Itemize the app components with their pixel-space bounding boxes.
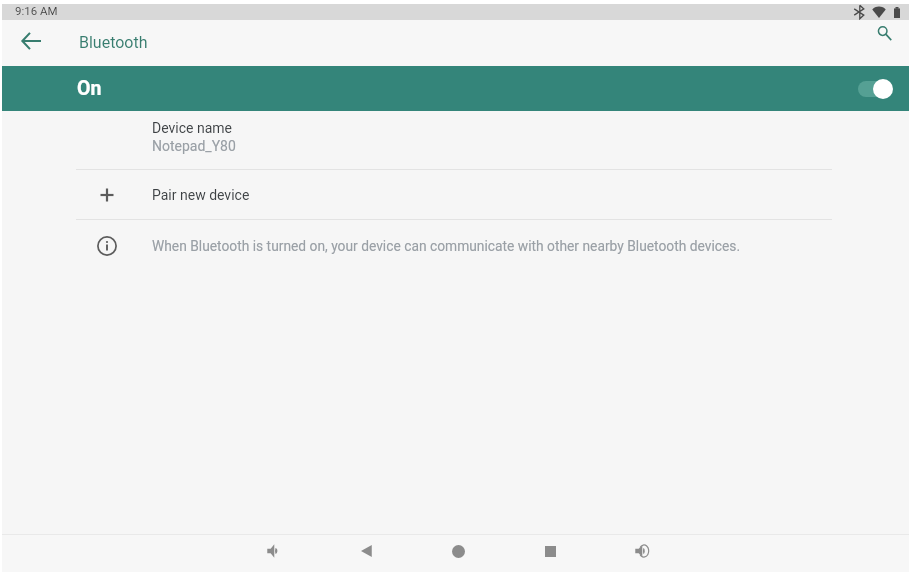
- staticText: 9:16 AM: [15, 4, 58, 17]
- button[interactable]: On: [2, 66, 909, 111]
- staticText: When Bluetooth is turned on, your device…: [152, 238, 741, 254]
- button[interactable]: Back: [13, 23, 49, 59]
- button[interactable]: Back: [349, 534, 383, 568]
- button[interactable]: Search: [869, 18, 899, 48]
- staticText: Bluetooth: [79, 33, 148, 52]
- staticText: On: [77, 77, 102, 100]
- staticText: Device name: [152, 120, 232, 136]
- button[interactable]: Recents: [533, 534, 567, 568]
- button[interactable]: Volume up: [625, 534, 659, 568]
- staticText: Pair new device: [152, 187, 250, 203]
- button[interactable]: Device name: [2, 112, 909, 169]
- button[interactable]: Home: [441, 534, 475, 568]
- button[interactable]: Volume down: [257, 534, 291, 568]
- staticText: Notepad_Y80: [152, 138, 236, 154]
- button[interactable]: Pair new device: [2, 170, 909, 219]
